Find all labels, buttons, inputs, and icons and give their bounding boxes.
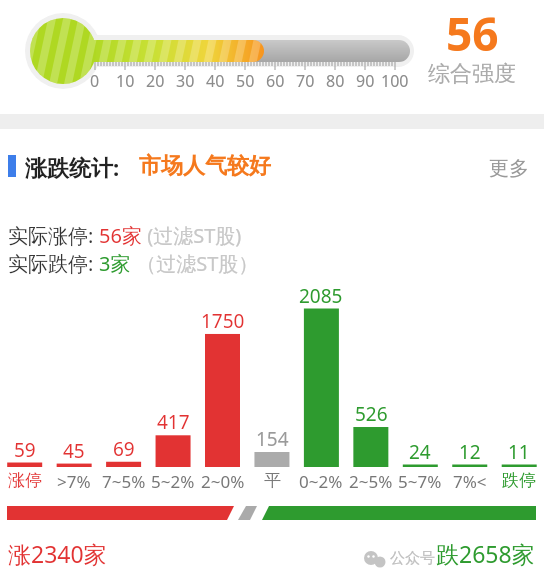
staticText: 56 xyxy=(446,2,499,65)
staticText: 10 xyxy=(116,70,135,92)
staticText: 5~7% xyxy=(398,470,442,493)
staticText: 100 xyxy=(381,70,409,92)
staticText: （过滤ST股） xyxy=(131,250,259,277)
staticText: >7% xyxy=(57,470,91,493)
staticText: 50 xyxy=(236,70,255,92)
button[interactable]: 涨跌统计: xyxy=(25,152,120,182)
staticText: 60 xyxy=(266,70,285,92)
staticText: 59 xyxy=(14,437,36,463)
staticText: 2~0% xyxy=(201,470,245,493)
staticText: 7%< xyxy=(453,470,487,493)
staticText: 80 xyxy=(326,70,345,92)
button[interactable]: 更多 xyxy=(489,156,529,181)
staticText: 0 xyxy=(90,70,100,92)
staticText: 平 xyxy=(264,470,281,491)
staticText: 30 xyxy=(176,70,195,92)
staticText: 实际跌停: xyxy=(8,250,99,277)
staticText: 实际涨停: xyxy=(8,222,99,249)
staticText: 跌停 xyxy=(502,470,536,491)
staticText: 涨2340家 xyxy=(8,538,107,569)
button[interactable]: 2~0% xyxy=(195,470,251,493)
staticText: 24 xyxy=(409,439,431,465)
staticText: 56家 xyxy=(99,222,142,249)
staticText: 417 xyxy=(157,409,190,435)
staticText: 40 xyxy=(206,70,225,92)
staticText: 45 xyxy=(63,438,85,464)
staticText: 90 xyxy=(356,70,375,92)
button[interactable]: 平 xyxy=(244,470,300,491)
staticText: 5~2% xyxy=(151,470,195,493)
button[interactable]: 2~5% xyxy=(343,470,399,493)
button[interactable]: 0~2% xyxy=(293,470,349,493)
button[interactable]: 7~5% xyxy=(96,470,152,493)
staticText: 3家 xyxy=(99,250,131,277)
staticText: 69 xyxy=(113,436,135,462)
staticText: 涨跌统计: xyxy=(25,152,120,182)
staticText: 20 xyxy=(146,70,165,92)
staticText: 跌2658家 xyxy=(436,538,535,569)
staticText: 更多 xyxy=(489,156,529,181)
staticText: 11 xyxy=(508,439,530,465)
button[interactable]: 跌停 xyxy=(491,470,544,491)
staticText: 1750 xyxy=(201,308,245,334)
staticText: 涨停 xyxy=(8,470,42,491)
staticText: 综合强度 xyxy=(428,60,516,88)
button[interactable]: 5~7% xyxy=(392,470,448,493)
button[interactable]: 涨停 xyxy=(0,470,53,491)
button[interactable]: >7% xyxy=(46,470,102,493)
staticText: 0~2% xyxy=(299,470,343,493)
staticText: 2~5% xyxy=(349,470,393,493)
staticText: 70 xyxy=(296,70,315,92)
staticText: 2085 xyxy=(299,283,343,309)
staticText: (过滤ST股) xyxy=(142,222,242,249)
staticText: 公众号 xyxy=(390,549,435,568)
staticText: 市场人气较好 xyxy=(139,152,271,180)
staticText: 7~5% xyxy=(102,470,146,493)
staticText: 154 xyxy=(256,426,289,452)
button[interactable]: 5~2% xyxy=(145,470,201,493)
staticText: 12 xyxy=(459,439,481,465)
staticText: 526 xyxy=(355,401,388,427)
button[interactable]: 7%< xyxy=(442,470,498,493)
